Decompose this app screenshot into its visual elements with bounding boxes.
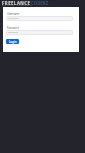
staticText: Password (8, 31, 18, 34)
staticText: Username (7, 12, 20, 15)
button[interactable]: Login (6, 39, 19, 44)
staticText: Password (7, 26, 19, 29)
button[interactable]: Username (6, 16, 73, 21)
staticText: Username (8, 17, 19, 20)
staticText: WEB DESIGN . DEVELOPMENT (2, 4, 32, 7)
staticText: FREELANCE (2, 0, 31, 6)
button[interactable]: Password (6, 30, 73, 35)
staticText: Login (9, 40, 17, 44)
staticText: CODERZ (31, 0, 49, 6)
